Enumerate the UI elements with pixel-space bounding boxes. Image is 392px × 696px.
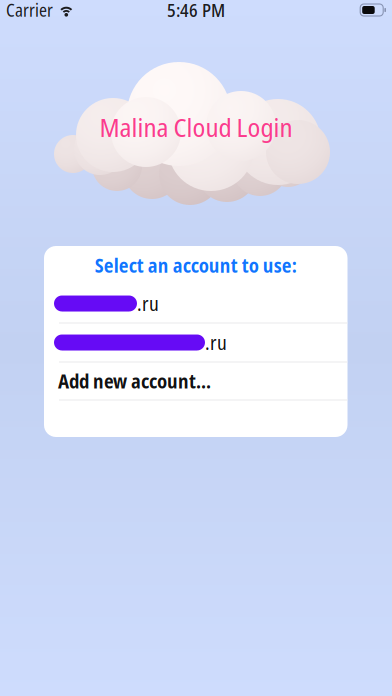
staticText: .ru (137, 290, 159, 317)
staticText: Carrier (6, 0, 53, 22)
staticText: Add new account... (58, 368, 211, 394)
staticText: .ru (205, 329, 227, 356)
staticText: Select an account to use: (95, 252, 297, 278)
button[interactable]: Account (44, 284, 347, 322)
staticText: Malina Cloud Login (99, 109, 292, 145)
button[interactable]: Account (44, 323, 347, 361)
staticText: 5:46 PM (167, 0, 225, 22)
button[interactable]: Add new account... (44, 362, 347, 399)
